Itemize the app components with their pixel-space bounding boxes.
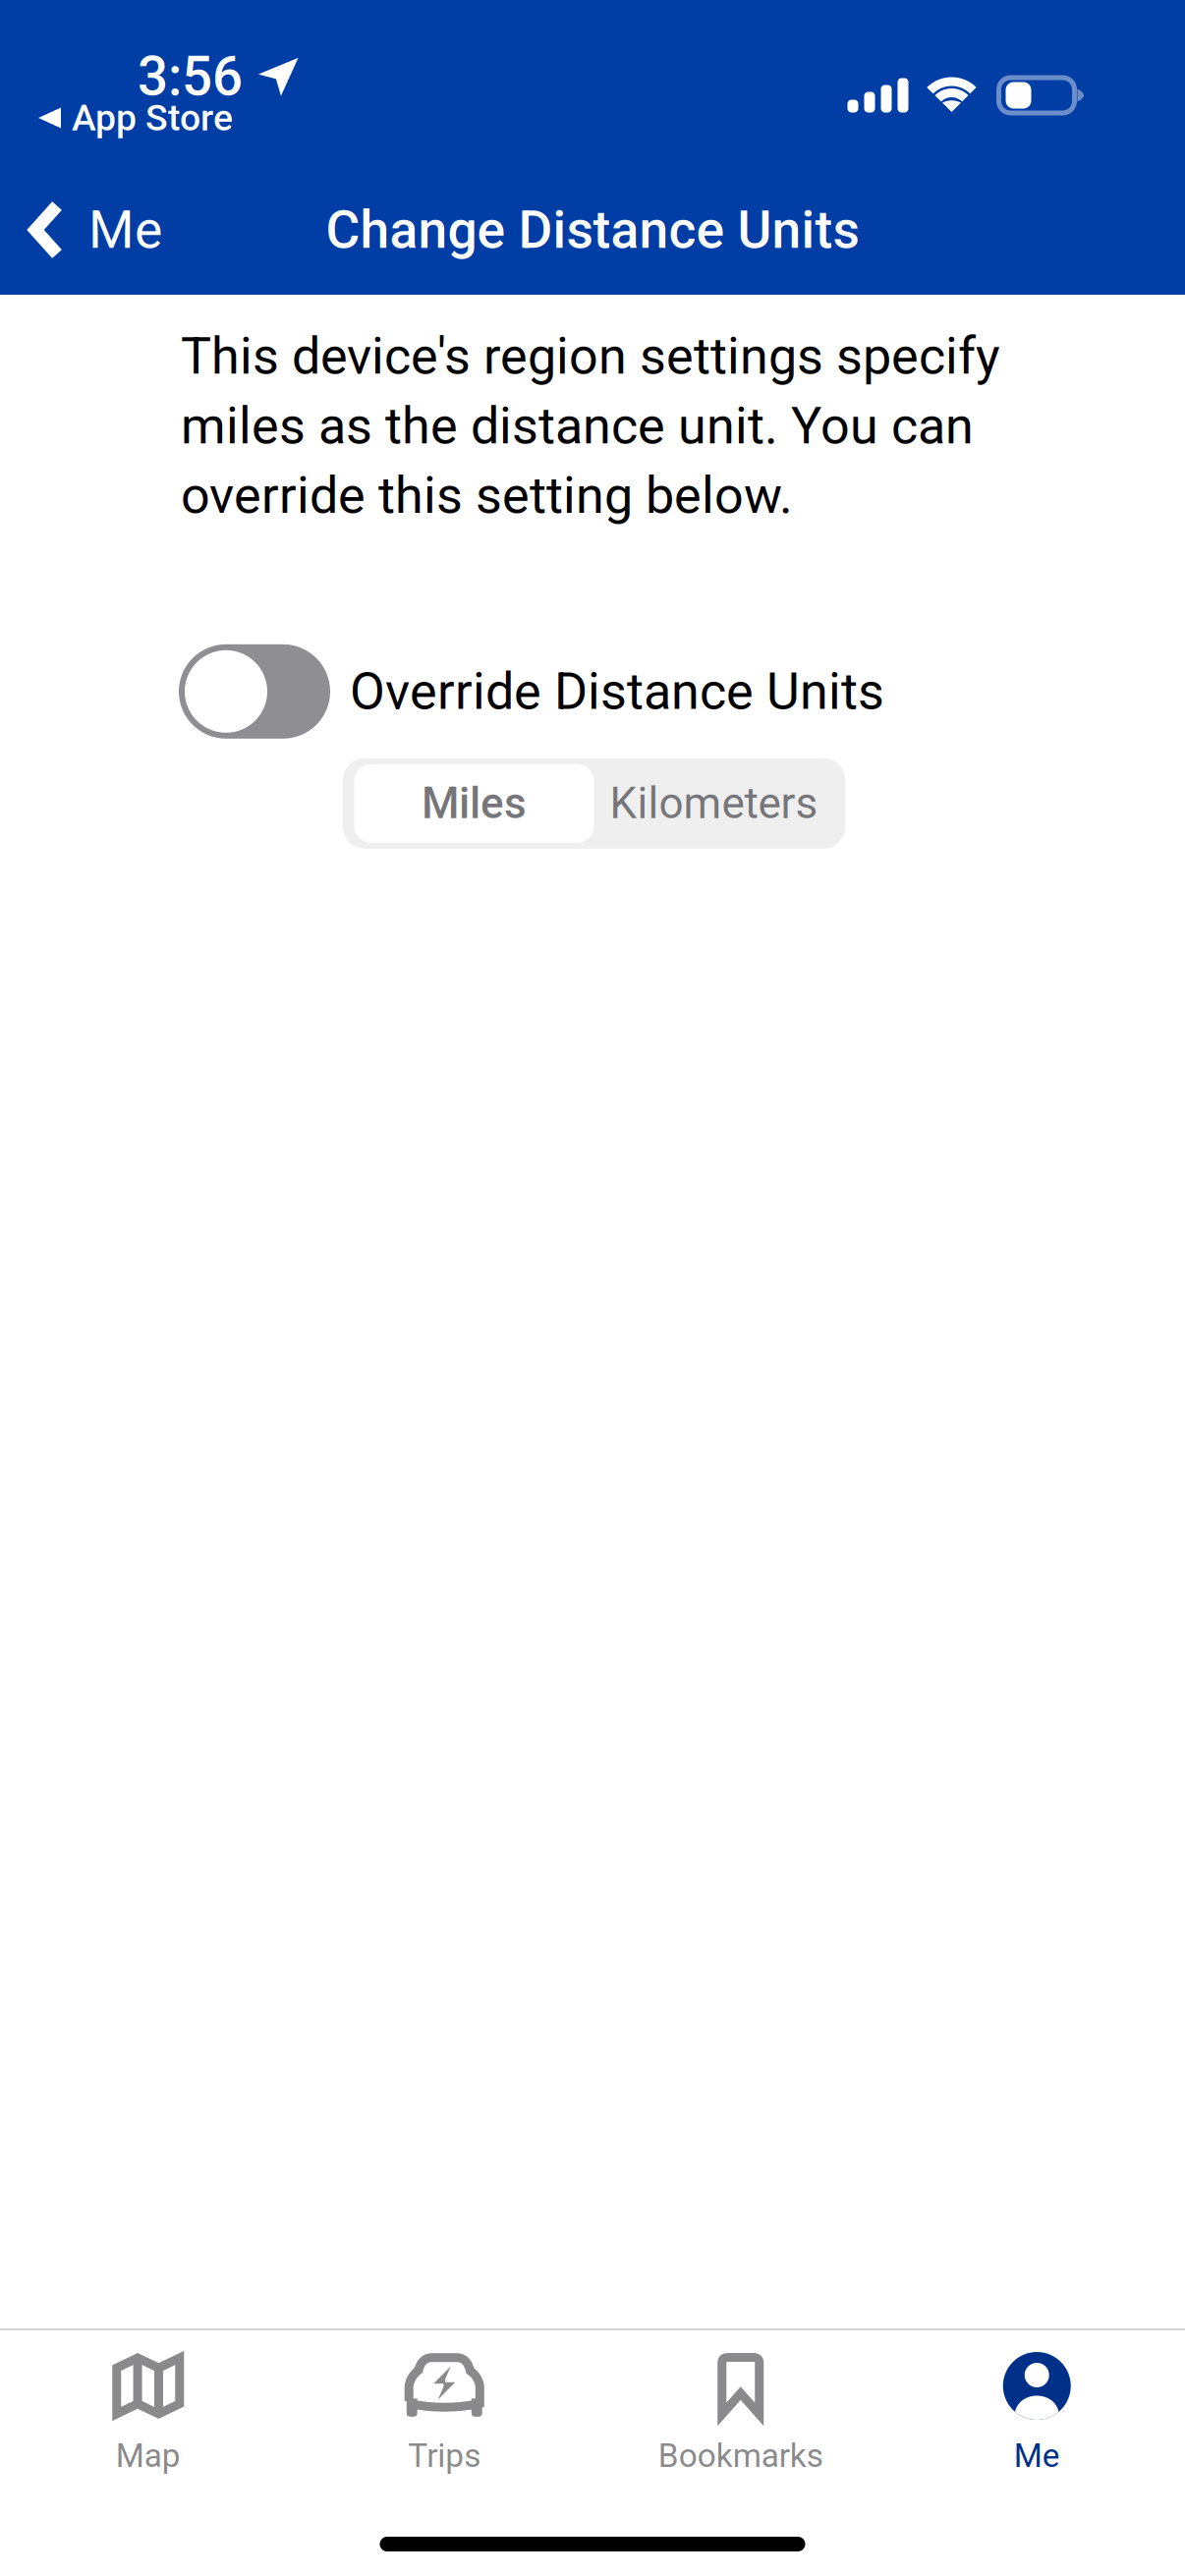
button[interactable]: Map — [0, 2330, 296, 2475]
staticText: This device's region settings specify mi… — [181, 326, 1000, 525]
button[interactable]: Me — [889, 2330, 1185, 2475]
button[interactable]: Bookmarks — [592, 2330, 889, 2475]
staticText: Trips — [408, 2436, 481, 2475]
staticText: Me — [1014, 2436, 1060, 2475]
staticText: App Store — [72, 96, 233, 139]
staticText: Change Distance Units — [326, 199, 859, 261]
staticText: Miles — [422, 778, 527, 829]
staticText: Override Distance Units — [350, 661, 884, 721]
button[interactable] — [179, 644, 330, 739]
button[interactable]: Me — [0, 182, 162, 278]
staticText: 3:56 — [138, 45, 243, 108]
button[interactable]: Kilometers — [594, 758, 839, 849]
button[interactable]: Miles — [349, 758, 594, 849]
staticText: Kilometers — [610, 778, 818, 829]
staticText: Me — [88, 199, 162, 261]
staticText: Map — [116, 2436, 181, 2475]
button[interactable]: Trips — [296, 2330, 592, 2475]
staticText: Bookmarks — [658, 2436, 823, 2475]
